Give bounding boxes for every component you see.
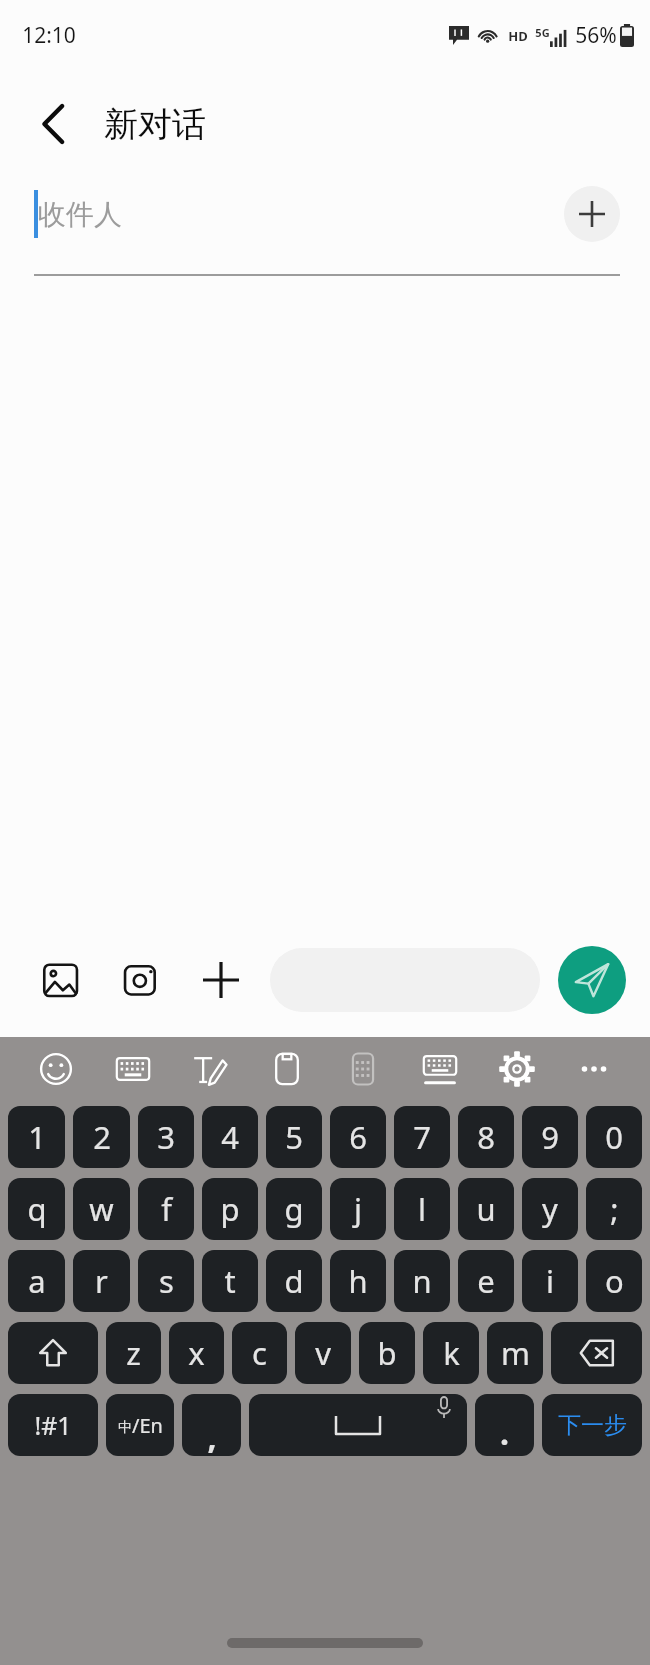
button[interactable]: 3 [138,1106,194,1168]
button[interactable]: Send [558,946,626,1014]
button[interactable]: u [458,1178,514,1240]
button[interactable]: Back [30,100,78,148]
button[interactable]: z [106,1322,161,1384]
staticText: c [252,1332,267,1374]
staticText: ; [610,1188,619,1230]
button[interactable]: Language [106,1394,174,1456]
button[interactable]: Camera [114,953,168,1007]
staticText: . [500,1411,509,1455]
button[interactable]: p [202,1178,258,1240]
button[interactable]: 1 [8,1106,65,1168]
button[interactable]: x [169,1322,224,1384]
button[interactable]: 6 [330,1106,386,1168]
staticText: g [284,1188,304,1230]
staticText: z [126,1332,141,1374]
staticText: v [315,1332,331,1374]
staticText: 6 [349,1116,367,1158]
button[interactable]: a [8,1250,65,1312]
button[interactable]: h [330,1250,386,1312]
button[interactable]: Floating keyboard [411,1040,469,1098]
button[interactable]: Clipboard [258,1040,316,1098]
staticText: j [354,1188,362,1230]
button[interactable]: 8 [458,1106,514,1168]
staticText: !#1 [34,1408,72,1442]
button[interactable]: 4 [202,1106,258,1168]
button[interactable]: 9 [522,1106,578,1168]
button[interactable]: v [295,1322,351,1384]
button[interactable]: 收件人 [34,178,564,250]
staticText: 9 [541,1116,559,1158]
button[interactable]: g [266,1178,322,1240]
button[interactable]: y [522,1178,578,1240]
staticText: s [159,1260,174,1302]
staticText: 4 [221,1116,239,1158]
staticText: 1 [28,1116,46,1158]
staticText: 8 [477,1116,495,1158]
button[interactable]: e [458,1250,514,1312]
button[interactable]: b [359,1322,415,1384]
staticText: k [443,1332,460,1374]
button[interactable]: Keyboard layout [104,1040,162,1098]
button[interactable]: q [8,1178,65,1240]
staticText: n [412,1260,432,1302]
button[interactable]: 5 [266,1106,322,1168]
staticText: e [477,1260,495,1302]
staticText: m [501,1332,530,1374]
staticText: 下一步 [558,1411,627,1440]
button[interactable]: More attachments [194,953,248,1007]
button[interactable]: Next [542,1394,642,1456]
button[interactable]: Gallery [34,953,88,1007]
button[interactable]: Emoji [27,1040,85,1098]
staticText: l [418,1188,426,1230]
button[interactable]: Handwriting [181,1040,239,1098]
button[interactable]: 7 [394,1106,450,1168]
button[interactable]: More options [565,1040,623,1098]
button[interactable]: Backspace [551,1322,642,1384]
staticText: 0 [605,1116,623,1158]
staticText: 收件人 [38,197,122,232]
button[interactable]: f [138,1178,194,1240]
staticText: /En [132,1412,163,1439]
button[interactable]: m [487,1322,543,1384]
button[interactable]: r [73,1250,130,1312]
button[interactable]: Settings [488,1040,546,1098]
button[interactable]: Add recipient [564,186,620,242]
staticText: 3 [157,1116,175,1158]
button[interactable]: Space [249,1394,467,1456]
staticText: 中 [118,1419,132,1437]
staticText: h [348,1260,368,1302]
button[interactable]: k [423,1322,479,1384]
staticText: 7 [413,1116,431,1158]
staticText: o [605,1260,624,1302]
staticText: q [27,1188,47,1230]
button[interactable]: Period [475,1394,534,1456]
button[interactable]: o [586,1250,642,1312]
button[interactable]: j [330,1178,386,1240]
button[interactable]: d [266,1250,322,1312]
staticText: p [220,1188,240,1230]
button[interactable]: Number pad [334,1040,392,1098]
button[interactable]: l [394,1178,450,1240]
staticText: 2 [93,1116,111,1158]
button[interactable]: Comma [182,1394,241,1456]
button[interactable]: 0 [586,1106,642,1168]
button[interactable]: s [138,1250,194,1312]
button[interactable]: c [232,1322,287,1384]
staticText: 5 [285,1116,303,1158]
button[interactable]: 2 [73,1106,130,1168]
staticText: a [28,1260,46,1302]
button[interactable]: ; [586,1178,642,1240]
button[interactable]: !#1 [8,1394,98,1456]
button[interactable]: i [522,1250,578,1312]
staticText: t [224,1260,236,1302]
staticText: 5G [535,25,550,40]
button[interactable]: Shift [8,1322,98,1384]
staticText: w [89,1188,114,1230]
staticText: 新对话 [104,103,206,146]
button[interactable]: t [202,1250,258,1312]
button[interactable]: n [394,1250,450,1312]
staticText: 12:10 [22,21,76,50]
button[interactable]: w [73,1178,130,1240]
staticText: u [476,1188,496,1230]
